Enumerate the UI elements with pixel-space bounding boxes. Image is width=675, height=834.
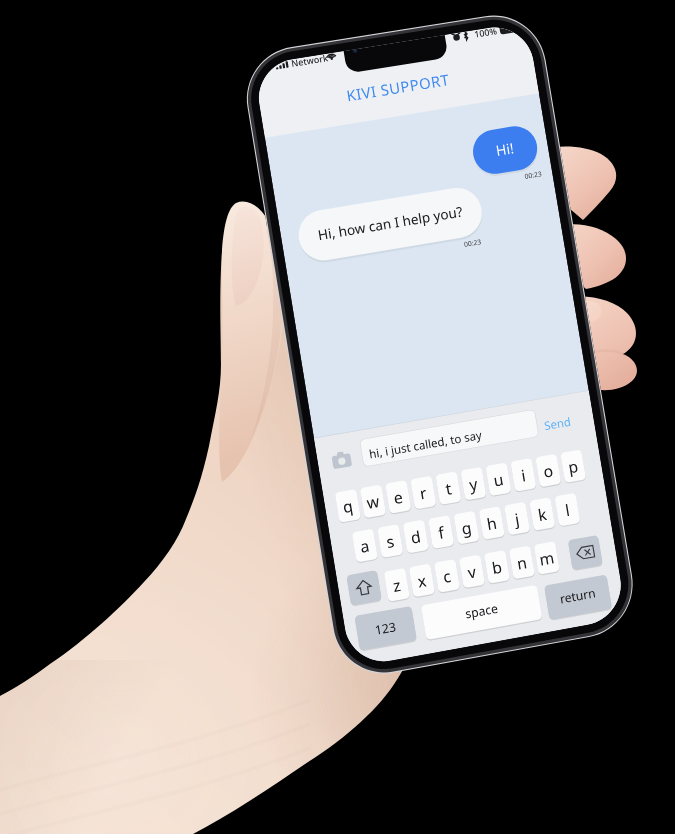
button[interactable]	[0, 0, 675, 834]
